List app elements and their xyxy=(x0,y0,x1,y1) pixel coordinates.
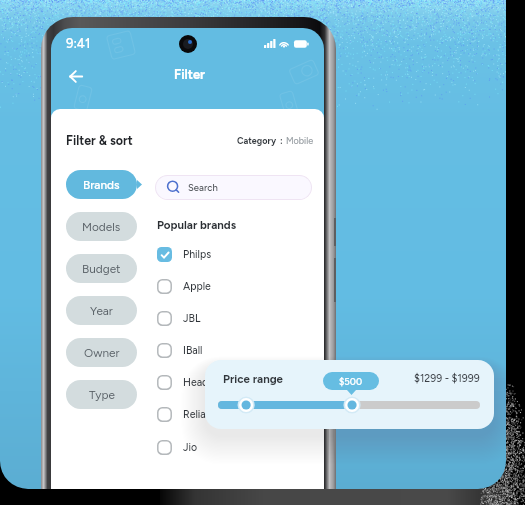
staticText: Mobile xyxy=(286,135,314,146)
staticText: $500 xyxy=(339,376,363,387)
button[interactable]: Back xyxy=(59,60,92,93)
button[interactable]: $500 xyxy=(323,372,379,390)
button[interactable]: Year xyxy=(66,296,137,325)
staticText: Apple xyxy=(183,280,211,293)
button[interactable]: Apple xyxy=(157,278,211,294)
staticText: Popular brands xyxy=(157,218,237,232)
button[interactable]: Headphone xyxy=(157,374,239,390)
button[interactable]: Owner xyxy=(66,338,137,367)
button[interactable]: Jio xyxy=(157,439,198,455)
staticText: Reliance xyxy=(183,408,224,421)
staticText: JBL xyxy=(183,312,201,325)
button[interactable]: Category xyxy=(237,135,314,146)
button[interactable]: IBall xyxy=(157,342,203,358)
staticText: Year xyxy=(90,304,113,318)
staticText: Owner xyxy=(84,346,120,360)
button[interactable]: Brands xyxy=(66,170,137,199)
button[interactable]: Type xyxy=(66,380,137,409)
button[interactable]: Search xyxy=(156,176,311,199)
staticText: : xyxy=(280,135,283,146)
staticText: Brands xyxy=(83,178,120,192)
staticText: 9:41 xyxy=(66,36,91,52)
staticText: IBall xyxy=(183,344,203,357)
button[interactable]: Philps xyxy=(157,246,212,262)
staticText: Jio xyxy=(183,441,198,454)
staticText: Category xyxy=(237,135,277,146)
staticText: Filter & sort xyxy=(66,133,133,148)
staticText: Budget xyxy=(82,262,121,276)
staticText: Type xyxy=(89,388,115,402)
staticText: Filter xyxy=(174,67,206,83)
staticText: Models xyxy=(82,220,121,234)
staticText: Search xyxy=(188,182,218,193)
button[interactable]: Models xyxy=(66,212,137,241)
staticText: Philps xyxy=(183,248,212,261)
button[interactable]: JBL xyxy=(157,310,201,326)
button[interactable]: Budget xyxy=(66,254,137,283)
button[interactable]: Reliance xyxy=(157,406,224,422)
staticText: Price range xyxy=(223,372,283,386)
staticText: Headphone xyxy=(183,376,239,389)
staticText: $1299 - $1999 xyxy=(414,372,480,385)
